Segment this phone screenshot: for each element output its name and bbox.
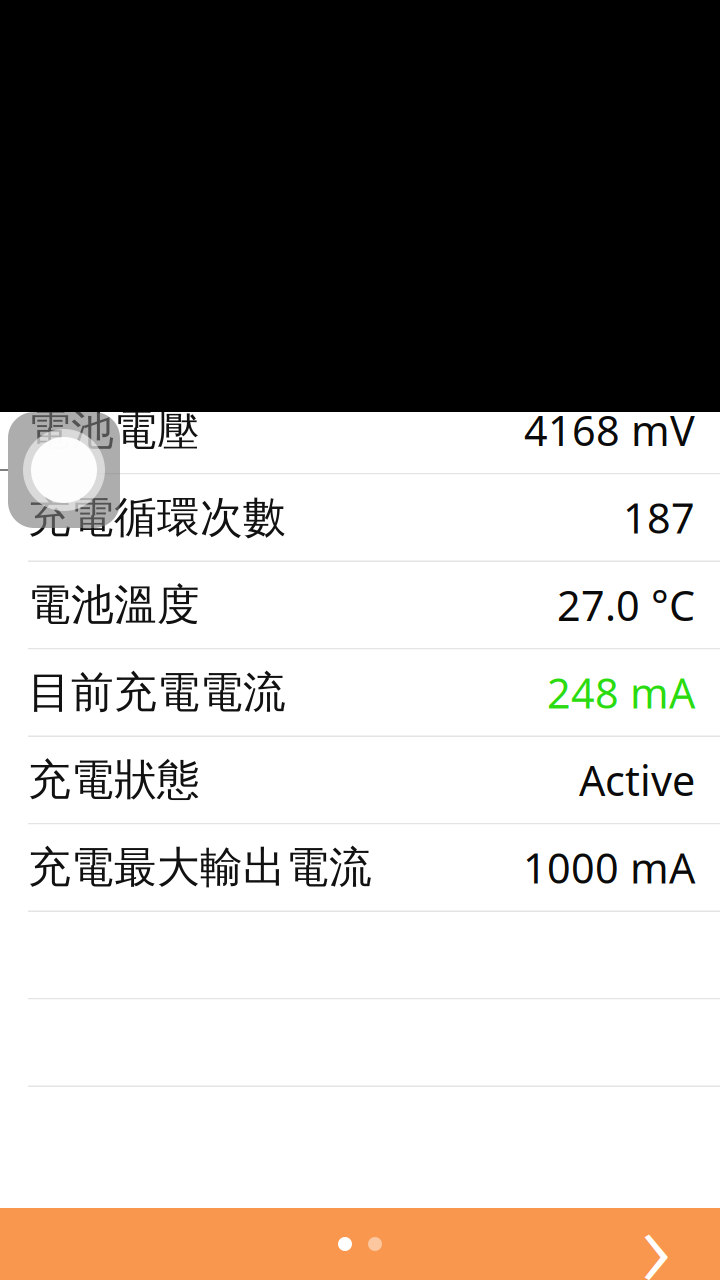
staticText: 248 mA (547, 665, 695, 720)
staticText: 1000 mA (523, 840, 695, 895)
button[interactable]: 充電最大輸出電流 (0, 824, 720, 910)
staticText: 充電循環次數 (28, 491, 286, 544)
button[interactable]: 電池電壓 (0, 387, 720, 473)
button[interactable]: 充電循環次數 (0, 474, 720, 560)
button[interactable]: 目前充電電流 (0, 649, 720, 735)
staticText: › (641, 1168, 671, 1280)
staticText: 27.0 °C (557, 578, 695, 632)
staticText: 目前充電電流 (28, 666, 286, 719)
button[interactable]: Next page (610, 1208, 702, 1280)
button[interactable]: AssistiveTouch (8, 412, 120, 528)
staticText: 電池電壓 (28, 404, 200, 456)
staticText: 電池溫度 (28, 579, 200, 631)
staticText: 充電最大輸出電流 (28, 841, 372, 894)
staticText: 4168 mV (524, 403, 695, 457)
button[interactable]: 充電狀態 (0, 737, 720, 823)
staticText: Active (579, 753, 695, 807)
staticText: 充電狀態 (28, 754, 200, 806)
button[interactable]: 電池溫度 (0, 562, 720, 648)
staticText: 187 (623, 490, 695, 545)
